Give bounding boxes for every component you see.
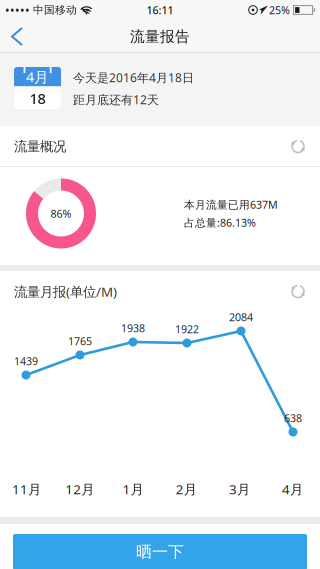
staticText: 16:11 xyxy=(146,3,173,17)
staticText: 638 xyxy=(284,411,302,425)
staticText: 4月 xyxy=(26,67,49,86)
staticText: 25% xyxy=(269,3,293,17)
staticText: 2月 xyxy=(176,480,197,498)
staticText: 11月 xyxy=(12,480,41,498)
button[interactable]: Back xyxy=(0,20,38,52)
staticText: 1月 xyxy=(122,480,143,498)
staticText: 12月 xyxy=(65,480,94,498)
staticText: 距月底还有12天 xyxy=(73,91,159,107)
staticText: 86% xyxy=(50,206,71,221)
staticText: 占总量:86.13% xyxy=(184,215,256,230)
button[interactable]: 刷新 xyxy=(285,133,311,159)
staticText: 1439 xyxy=(14,354,38,368)
staticText: 1922 xyxy=(175,322,199,336)
staticText: 晒一下 xyxy=(136,542,184,562)
staticText: 4月 xyxy=(282,480,303,498)
staticText: 2084 xyxy=(229,310,253,324)
button[interactable]: 刷新 xyxy=(285,278,311,304)
staticText: 今天是2016年4月18日 xyxy=(73,69,194,85)
staticText: 3月 xyxy=(229,480,250,498)
staticText: 1765 xyxy=(68,334,92,348)
staticText: 本月流量已用637M xyxy=(184,197,278,212)
staticText: 流量概况 xyxy=(14,138,66,155)
staticText: 中国移动 xyxy=(30,3,80,16)
button[interactable]: 晒一下 xyxy=(0,524,320,569)
staticText: 18 xyxy=(29,88,45,108)
staticText: 1938 xyxy=(121,321,145,335)
staticText: ••••• xyxy=(5,2,30,18)
staticText: 流量报告 xyxy=(130,27,190,45)
staticText: 流量月报(单位/M) xyxy=(14,283,117,300)
